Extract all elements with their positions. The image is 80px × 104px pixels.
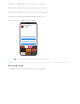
staticText: What is new in this build — [8, 65, 23, 66]
staticText: so the pictures themselves fill the whol… — [8, 15, 45, 17]
staticText: Apple has rebuilt the gallery around a s… — [8, 3, 46, 5]
staticText: A rewritten sharing sheet, much faster s… — [8, 68, 46, 70]
staticText: The redesigned Photos grid running on iP… — [17, 58, 50, 60]
staticText: whenever you scroll through a collection… — [8, 20, 36, 21]
staticText: now collapsed into one compact bar that … — [8, 11, 48, 13]
staticText: of photographs, and the library, albums … — [8, 7, 49, 9]
